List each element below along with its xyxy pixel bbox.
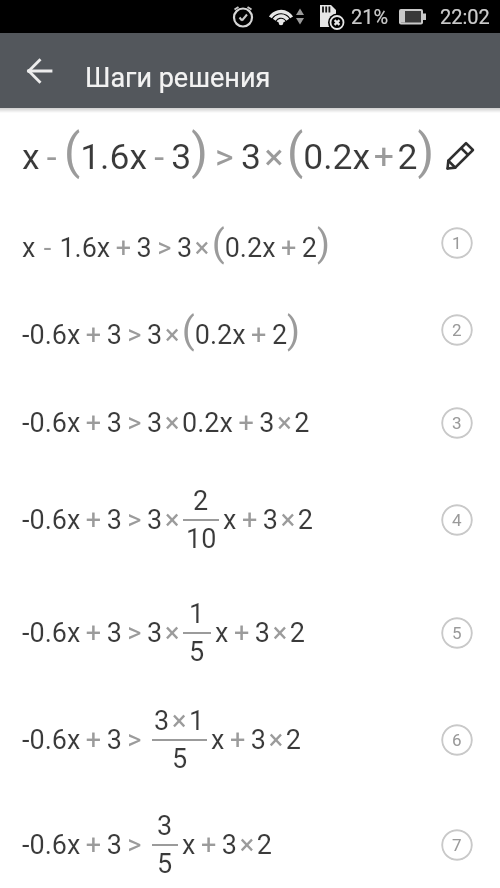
staticText: 5 bbox=[452, 623, 462, 643]
staticText: 4 bbox=[452, 510, 462, 530]
staticText: 5 bbox=[172, 743, 188, 775]
button[interactable] bbox=[442, 136, 480, 174]
button[interactable]: x - (1.6x - 3) > 3 × (0.2x + 2) bbox=[0, 118, 500, 194]
staticText: -0.6x + 3 > 3 × 0.2x + 3 × 2 bbox=[22, 407, 310, 439]
staticText: 3 bbox=[157, 810, 173, 842]
staticText: 10 bbox=[186, 523, 217, 555]
staticText: -0.6x + 3 > 3 × bbox=[22, 617, 183, 649]
button[interactable]: 7 bbox=[441, 829, 473, 861]
staticText: -0.6x + 3 > bbox=[22, 829, 147, 861]
button[interactable]: x - 1.6x + 3 > 3 × (0.2x + 2) bbox=[0, 213, 500, 273]
staticText: 5 bbox=[189, 636, 205, 668]
button[interactable]: 3 bbox=[441, 407, 473, 439]
staticText: 6 bbox=[452, 730, 462, 750]
button[interactable]: 6 bbox=[441, 724, 473, 756]
button[interactable]: -0.6x + 3 > 3 × (0.2x + 2) bbox=[0, 300, 500, 360]
staticText: 5 bbox=[157, 848, 173, 880]
staticText: 1 bbox=[452, 233, 462, 253]
staticText: 2 bbox=[452, 320, 462, 340]
staticText: 3 × 1 bbox=[154, 705, 205, 737]
staticText: -0.6x + 3 > 3 × bbox=[22, 504, 183, 536]
staticText: x - (1.6x - 3) > 3 × (0.2x + 2) bbox=[22, 124, 435, 180]
button[interactable]: -0.6x + 3 > 3 × 0.2x + 3 × 2 bbox=[0, 393, 500, 453]
staticText: x + 3 × 2 bbox=[223, 504, 314, 536]
staticText: x + 3 × 2 bbox=[182, 829, 273, 861]
staticText: x + 3 × 2 bbox=[215, 617, 306, 649]
button[interactable]: 4 bbox=[441, 504, 473, 536]
staticText: 2 bbox=[193, 485, 209, 517]
staticText: 21% bbox=[351, 5, 389, 28]
staticText: 3 bbox=[452, 413, 462, 433]
button[interactable]: -0.6x + 3 > 3 × bbox=[0, 588, 500, 678]
button[interactable]: -0.6x + 3 > 3 × bbox=[0, 475, 500, 565]
staticText: 7 bbox=[452, 835, 462, 855]
button[interactable]: 5 bbox=[441, 617, 473, 649]
staticText: x + 3 × 2 bbox=[211, 724, 302, 756]
staticText: -0.6x + 3 > bbox=[22, 724, 147, 756]
staticText: Шаги решения bbox=[85, 62, 271, 94]
button[interactable]: 1 bbox=[441, 227, 473, 259]
staticText: 22:02 bbox=[440, 5, 490, 28]
staticText: x - 1.6x + 3 > 3 × (0.2x + 2) bbox=[22, 222, 330, 265]
button[interactable] bbox=[16, 47, 64, 95]
staticText: 1 bbox=[189, 598, 205, 630]
button[interactable]: 2 bbox=[441, 314, 473, 346]
button[interactable]: -0.6x + 3 > bbox=[0, 800, 500, 888]
button[interactable]: -0.6x + 3 > bbox=[0, 695, 500, 785]
staticText: -0.6x + 3 > 3 × (0.2x + 2) bbox=[22, 309, 300, 352]
